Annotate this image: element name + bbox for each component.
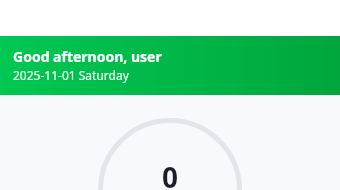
staticText: Good afternoon, user — [13, 47, 162, 66]
staticText: 2025-11-01 Saturday — [13, 67, 129, 83]
button[interactable]: Daily step goal progress, 0 steps — [98, 118, 242, 190]
button[interactable]: Good afternoon, user — [0, 36, 340, 95]
staticText: 0 — [157, 158, 183, 190]
